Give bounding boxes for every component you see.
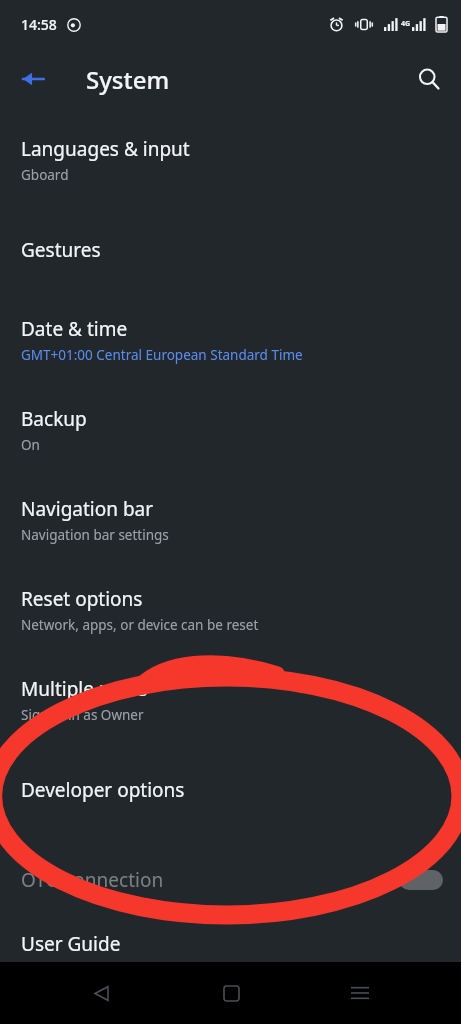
staticText: 4G bbox=[401, 19, 411, 29]
button[interactable]: Multiple users bbox=[0, 655, 461, 745]
staticText: Signed in as Owner bbox=[21, 706, 144, 724]
staticText: Multiple users bbox=[21, 676, 148, 702]
button[interactable]: Developer options bbox=[0, 745, 461, 835]
button[interactable]: Home bbox=[203, 965, 259, 1021]
staticText: Gboard bbox=[21, 166, 69, 184]
button[interactable]: Navigation bar bbox=[0, 475, 461, 565]
button[interactable]: Recents bbox=[332, 965, 388, 1021]
staticText: On bbox=[21, 436, 40, 454]
button[interactable]: Search bbox=[407, 57, 451, 101]
staticText: Network, apps, or device can be reset bbox=[21, 616, 259, 634]
staticText: User Guide bbox=[21, 931, 121, 957]
staticText: System bbox=[86, 63, 170, 96]
button[interactable]: Gestures bbox=[0, 205, 461, 295]
button[interactable]: Back bbox=[12, 58, 54, 100]
staticText: Backup bbox=[21, 406, 87, 432]
button[interactable]: OTG connection toggle bbox=[399, 870, 443, 890]
button[interactable]: Backup bbox=[0, 385, 461, 475]
staticText: OTG connection bbox=[21, 867, 164, 893]
staticText: Gestures bbox=[21, 237, 101, 263]
button[interactable]: Languages & input bbox=[0, 115, 461, 205]
staticText: Date & time bbox=[21, 316, 128, 342]
button[interactable]: Back bbox=[73, 965, 129, 1021]
button[interactable]: Date & time bbox=[0, 295, 461, 385]
staticText: GMT+01:00 Central European Standard Time bbox=[21, 346, 303, 364]
button[interactable]: OTG connection bbox=[0, 835, 461, 925]
staticText: Developer options bbox=[21, 777, 185, 803]
staticText: Navigation bar settings bbox=[21, 526, 169, 544]
button[interactable]: Reset options bbox=[0, 565, 461, 655]
staticText: Navigation bar bbox=[21, 496, 154, 522]
staticText: Reset options bbox=[21, 586, 143, 612]
staticText: Languages & input bbox=[21, 136, 190, 162]
button[interactable]: User Guide bbox=[0, 925, 461, 962]
staticText: 14:58 bbox=[21, 15, 57, 34]
